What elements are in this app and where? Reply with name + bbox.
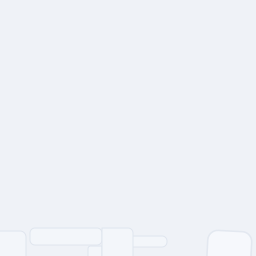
- button[interactable]: Tilted card: [207, 231, 251, 256]
- button[interactable]: Block: [102, 228, 133, 256]
- button[interactable]: Card: [0, 231, 26, 256]
- button[interactable]: Wide card: [30, 228, 102, 245]
- button[interactable]: Pill: [123, 236, 167, 247]
- button[interactable]: Small card: [88, 246, 102, 256]
